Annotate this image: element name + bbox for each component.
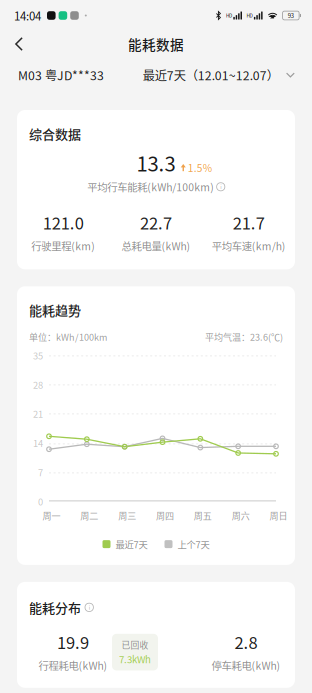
staticText: 周四 bbox=[156, 509, 174, 522]
staticText: 7.3kWh bbox=[119, 652, 151, 666]
staticText: 周二 bbox=[80, 509, 98, 522]
staticText: 22.7 bbox=[140, 210, 172, 234]
staticText: 28 bbox=[33, 378, 43, 391]
staticText: 19.9 bbox=[57, 630, 89, 654]
staticText: i bbox=[89, 603, 90, 611]
staticText: 能耗分布 bbox=[29, 598, 81, 617]
staticText: 1.5% bbox=[188, 160, 212, 175]
staticText: 21.7 bbox=[233, 210, 265, 234]
staticText: 能耗趋势 bbox=[29, 300, 81, 319]
staticText: 最近7天 bbox=[115, 537, 147, 551]
staticText: HD bbox=[226, 12, 232, 19]
button[interactable]: M03 粤JD***33 bbox=[18, 59, 104, 91]
staticText: 35 bbox=[33, 349, 43, 362]
button[interactable]: Back bbox=[0, 28, 38, 60]
staticText: 行驶里程(km) bbox=[31, 238, 95, 253]
staticText: 平均行车能耗(kWh/100km) bbox=[87, 179, 214, 194]
staticText: 2.8 bbox=[234, 630, 257, 654]
staticText: 能耗数据 bbox=[128, 34, 184, 54]
staticText: 14:04 bbox=[14, 7, 41, 24]
staticText: 21 bbox=[33, 407, 43, 420]
staticText: 周三 bbox=[118, 509, 136, 522]
staticText: 0 bbox=[38, 495, 43, 508]
staticText: 已回收 bbox=[121, 638, 148, 651]
staticText: 周日 bbox=[270, 509, 288, 522]
staticText: 121.0 bbox=[43, 210, 84, 234]
staticText: 单位：kWh/100km bbox=[29, 330, 107, 343]
staticText: 7 bbox=[38, 465, 43, 479]
staticText: HD bbox=[246, 12, 252, 19]
staticText: 平均车速(km/h) bbox=[212, 238, 286, 253]
staticText: 总耗电量(kWh) bbox=[121, 238, 190, 253]
staticText: i bbox=[220, 183, 221, 191]
button[interactable]: 最近7天（12.01~12.07） bbox=[143, 59, 295, 91]
staticText: 停车耗电(kWh) bbox=[211, 658, 280, 673]
staticText: 周五 bbox=[194, 509, 212, 522]
staticText: 行程耗电(kWh) bbox=[38, 658, 107, 673]
staticText: 综合数据 bbox=[29, 124, 81, 143]
staticText: 平均气温：23.6(℃) bbox=[205, 330, 283, 343]
staticText: 14 bbox=[33, 436, 43, 450]
staticText: M03 粤JD***33 bbox=[18, 66, 104, 84]
staticText: 周六 bbox=[232, 509, 250, 522]
staticText: 周一 bbox=[42, 509, 60, 522]
staticText: 上个7天 bbox=[177, 537, 209, 551]
staticText: 13.3 bbox=[136, 148, 175, 177]
staticText: 最近7天（12.01~12.07） bbox=[143, 66, 279, 84]
staticText: 93 bbox=[288, 11, 294, 20]
